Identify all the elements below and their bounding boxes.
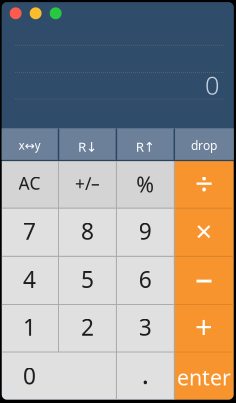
staticText: × (195, 211, 212, 250)
button[interactable]: R↑ (116, 128, 174, 160)
button[interactable]: 7 (0, 208, 58, 256)
staticText: 3 (139, 312, 152, 342)
button[interactable]: x↔y (0, 128, 58, 160)
staticText: drop (191, 137, 217, 153)
staticText: + (195, 306, 213, 346)
staticText: 1 (23, 312, 36, 342)
staticText: 7 (23, 216, 36, 246)
button[interactable]: +/– (58, 161, 116, 208)
staticText: 5 (81, 264, 94, 294)
button[interactable]: – (174, 256, 234, 304)
button[interactable]: 4 (0, 256, 58, 304)
button[interactable]: enter (174, 352, 234, 400)
button[interactable]: + (174, 304, 234, 352)
staticText: enter (177, 363, 231, 391)
button[interactable]: 6 (116, 256, 174, 304)
staticText: 0 (205, 68, 219, 102)
staticText: 4 (23, 264, 36, 294)
button[interactable]: . (116, 352, 174, 400)
staticText: x↔y (18, 137, 40, 153)
button[interactable]: % (116, 161, 174, 208)
staticText: 0 (23, 361, 36, 391)
staticText: % (136, 170, 154, 198)
button[interactable]: 5 (58, 256, 116, 304)
staticText: . (142, 356, 149, 391)
staticText: R↓ (78, 138, 97, 155)
button[interactable]: 0 (0, 352, 116, 400)
staticText: 2 (81, 312, 94, 342)
button[interactable]: ÷ (174, 161, 234, 208)
button[interactable]: R↓ (58, 128, 116, 160)
button[interactable]: 9 (116, 208, 174, 256)
button[interactable]: drop (174, 128, 234, 160)
button[interactable]: 8 (58, 208, 116, 256)
button[interactable]: 2 (58, 304, 116, 352)
staticText: AC (18, 172, 40, 195)
staticText: 8 (81, 216, 94, 246)
staticText: 6 (139, 264, 152, 294)
button[interactable]: 3 (116, 304, 174, 352)
button[interactable]: 1 (0, 304, 58, 352)
staticText: +/– (75, 172, 100, 195)
staticText: 9 (139, 216, 152, 246)
staticText: R↑ (136, 138, 155, 155)
staticText: – (195, 253, 213, 300)
staticText: ÷ (195, 162, 213, 204)
button[interactable]: × (174, 208, 234, 256)
button[interactable]: AC (0, 161, 58, 208)
